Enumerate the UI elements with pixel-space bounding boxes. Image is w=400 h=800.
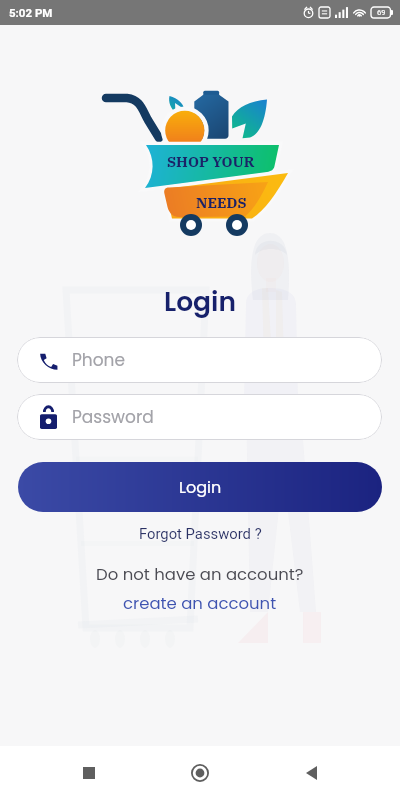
staticText: SHOP YOUR: [167, 152, 255, 171]
staticText: NEEDS: [196, 193, 247, 212]
staticText: create an account: [123, 592, 277, 615]
other: Phone number: [39, 351, 58, 370]
other: Password: [40, 406, 57, 429]
button[interactable]: Home: [178, 751, 222, 795]
button[interactable]: Forgot Password ?: [127, 520, 274, 547]
staticText: Login: [179, 476, 222, 498]
button[interactable]: Phone number: [17, 337, 382, 383]
staticText: Login: [164, 283, 236, 320]
button[interactable]: Password: [17, 394, 382, 440]
staticText: Password: [72, 405, 154, 429]
button[interactable]: create an account: [111, 589, 289, 618]
staticText: Do not have an account?: [96, 563, 304, 586]
staticText: 69: [377, 8, 386, 17]
button[interactable]: Back: [289, 751, 333, 795]
staticText: 5:02 PM: [9, 6, 53, 19]
staticText: Forgot Password ?: [139, 525, 262, 542]
button[interactable]: Recent apps: [67, 751, 111, 795]
staticText: Phone: [72, 348, 126, 372]
button[interactable]: Login: [18, 462, 382, 512]
